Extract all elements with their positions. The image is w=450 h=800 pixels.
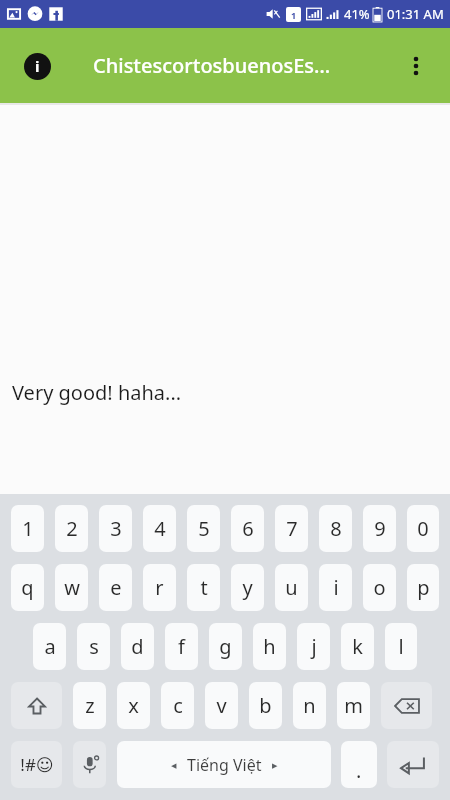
button[interactable]: Backspace — [381, 682, 432, 729]
staticText: g — [219, 633, 232, 660]
button[interactable]: 2 — [55, 505, 88, 552]
staticText: 1 — [291, 9, 297, 21]
button[interactable]: Voice input — [73, 741, 106, 788]
button[interactable]: w — [55, 564, 88, 611]
button[interactable]: d — [121, 623, 154, 670]
button[interactable]: 4 — [143, 505, 176, 552]
button[interactable]: ◂ — [117, 741, 331, 788]
button[interactable]: n — [293, 682, 326, 729]
button[interactable]: t — [187, 564, 220, 611]
staticText: n — [303, 692, 316, 719]
button[interactable]: q — [11, 564, 44, 611]
staticText: 7 — [286, 515, 298, 542]
button[interactable]: o — [363, 564, 396, 611]
staticText: h — [263, 633, 276, 660]
button[interactable]: c — [161, 682, 194, 729]
staticText: l — [398, 633, 404, 660]
staticText: u — [285, 574, 298, 601]
button[interactable]: r — [143, 564, 176, 611]
staticText: 8 — [330, 515, 342, 542]
button[interactable]: . — [341, 741, 377, 788]
staticText: i — [35, 56, 40, 76]
staticText: 3 — [110, 515, 122, 542]
button[interactable]: 5 — [187, 505, 220, 552]
staticText: w — [64, 574, 80, 601]
staticText: c — [173, 692, 183, 719]
button[interactable]: m — [337, 682, 370, 729]
button[interactable]: b — [249, 682, 282, 729]
staticText: i — [333, 574, 339, 601]
staticText: r — [155, 574, 164, 601]
staticText: ChistescortosbuenosEs… — [93, 52, 331, 79]
staticText: j — [311, 633, 317, 660]
staticText: k — [352, 633, 363, 660]
staticText: y — [242, 574, 253, 601]
staticText: 4 — [154, 515, 166, 542]
staticText: t — [200, 574, 208, 601]
staticText: Tiếng Việt — [187, 754, 262, 776]
button[interactable]: s — [77, 623, 110, 670]
button[interactable]: e — [99, 564, 132, 611]
button[interactable]: l — [385, 623, 417, 670]
button[interactable]: Shift — [11, 682, 62, 729]
staticText: ◂ — [171, 759, 177, 772]
staticText: ▸ — [272, 759, 278, 772]
staticText: 1 — [22, 515, 34, 542]
button[interactable]: 1 — [11, 505, 44, 552]
staticText: p — [417, 574, 430, 601]
button[interactable]: x — [117, 682, 150, 729]
button[interactable]: 8 — [319, 505, 352, 552]
button[interactable]: i — [319, 564, 352, 611]
button[interactable]: 9 — [363, 505, 396, 552]
staticText: d — [131, 633, 144, 660]
button[interactable]: h — [253, 623, 286, 670]
staticText: f — [178, 633, 185, 660]
button[interactable]: Enter — [387, 741, 439, 788]
staticText: 9 — [374, 515, 386, 542]
staticText: 2 — [66, 515, 78, 542]
button[interactable]: z — [73, 682, 106, 729]
staticText: z — [85, 692, 95, 719]
staticText: 6 — [242, 515, 254, 542]
button[interactable]: Info — [14, 43, 60, 89]
button[interactable]: !#☺ — [11, 741, 62, 788]
button[interactable]: f — [165, 623, 198, 670]
staticText: !#☺ — [20, 753, 54, 776]
staticText: q — [21, 574, 34, 601]
staticText: b — [259, 692, 272, 719]
button[interactable]: a — [33, 623, 66, 670]
button[interactable]: u — [275, 564, 308, 611]
button[interactable]: More options — [394, 44, 438, 88]
staticText: a — [44, 633, 56, 660]
button[interactable]: 3 — [99, 505, 132, 552]
staticText: 01:31 AM — [387, 5, 444, 23]
staticText: m — [344, 692, 363, 719]
staticText: Very good! haha... — [12, 379, 182, 406]
button[interactable]: 0 — [407, 505, 439, 552]
staticText: . — [356, 757, 362, 784]
button[interactable]: j — [297, 623, 330, 670]
staticText: o — [373, 574, 386, 601]
staticText: 41% — [344, 5, 370, 23]
staticText: s — [89, 633, 99, 660]
staticText: e — [110, 574, 122, 601]
staticText: 0 — [417, 515, 429, 542]
button[interactable]: 6 — [231, 505, 264, 552]
button[interactable]: p — [407, 564, 439, 611]
staticText: 5 — [198, 515, 210, 542]
staticText: x — [128, 692, 139, 719]
staticText: v — [216, 692, 227, 719]
button[interactable]: 7 — [275, 505, 308, 552]
button[interactable]: g — [209, 623, 242, 670]
button[interactable]: k — [341, 623, 374, 670]
button[interactable]: y — [231, 564, 264, 611]
button[interactable]: v — [205, 682, 238, 729]
